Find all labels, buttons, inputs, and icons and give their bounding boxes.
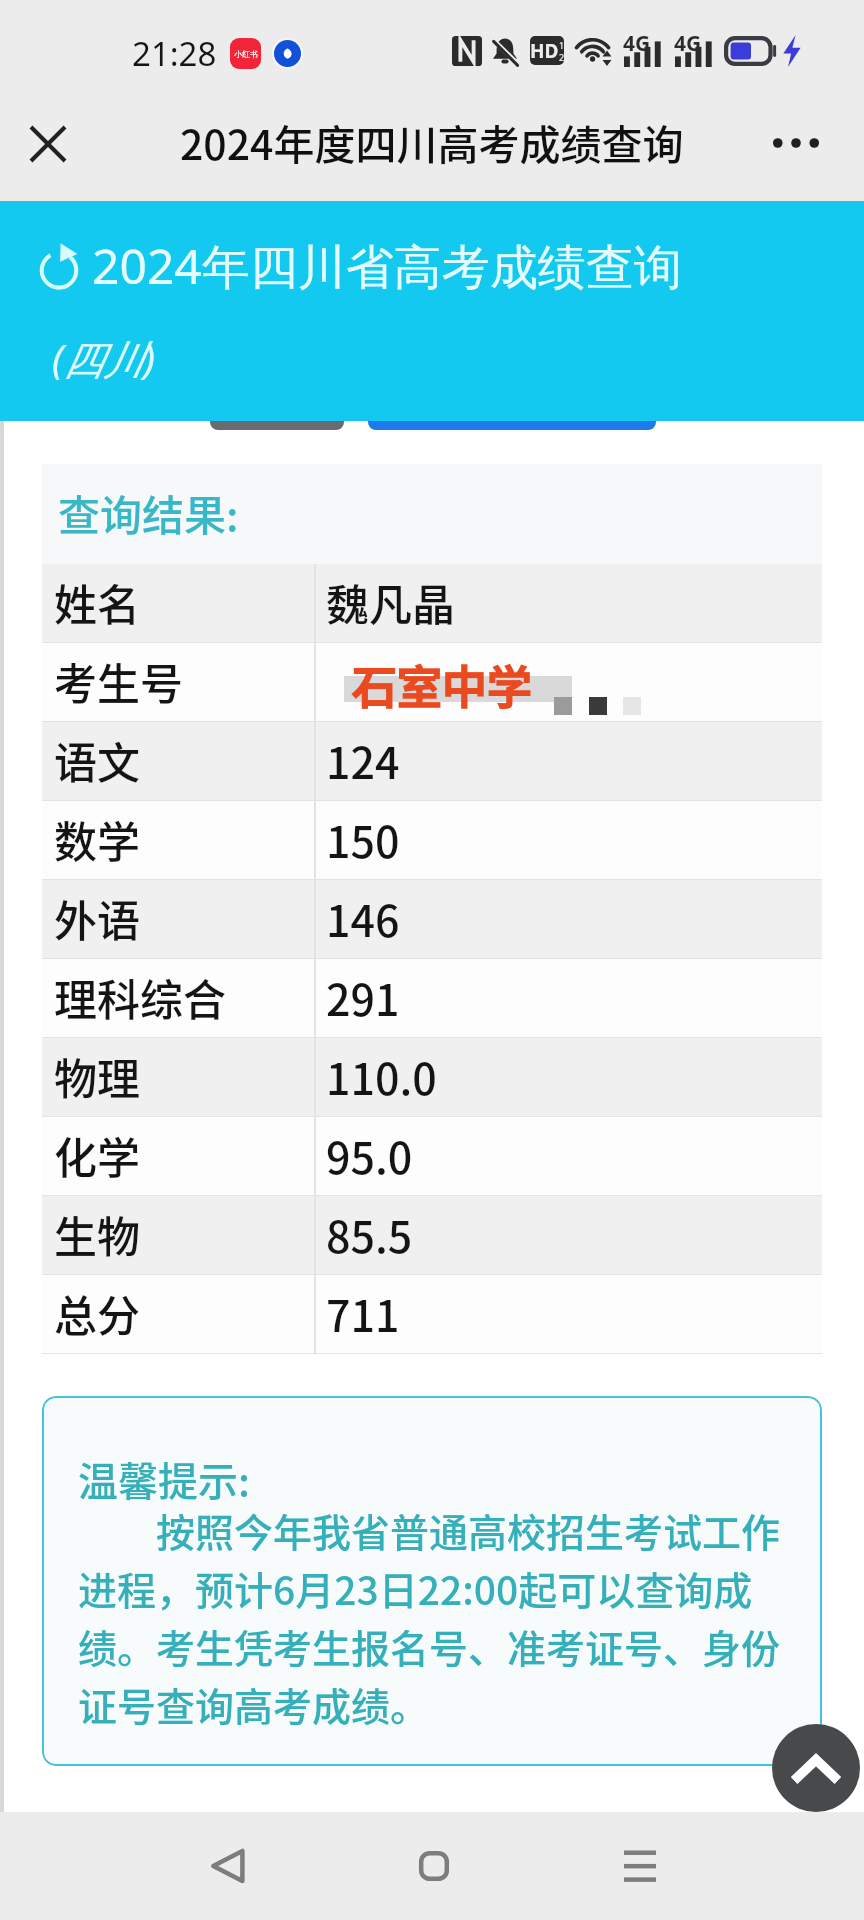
staticText: 21:28 [132, 31, 217, 76]
staticText: 95.0 [326, 1124, 413, 1186]
staticText: 4G [674, 29, 702, 58]
staticText: 化学 [54, 1124, 140, 1186]
staticText: 温馨提示: [78, 1450, 250, 1508]
button[interactable]: Scroll to top [772, 1724, 860, 1812]
staticText: 110.0 [326, 1045, 437, 1107]
staticText: 总分 [54, 1282, 140, 1344]
button[interactable] [210, 396, 344, 430]
staticText: 查询结果: [58, 482, 239, 543]
staticText: 考生号 [54, 650, 183, 712]
staticText: 石室中学 [351, 653, 532, 718]
staticText: 291 [326, 966, 400, 1028]
staticText: 绩。考生凭考生报名号、准考证号、身份 [78, 1618, 781, 1674]
button[interactable]: Close [8, 104, 88, 184]
button[interactable]: More options [756, 103, 836, 183]
staticText: 2 [559, 51, 564, 63]
staticText: 姓名 [54, 571, 140, 633]
staticText: HD [530, 38, 559, 64]
staticText: 1 [559, 39, 564, 51]
staticText: 进程，预计6月23日22:00起可以查询成 [78, 1560, 753, 1616]
staticText: 4G [623, 29, 651, 58]
staticText: 146 [326, 887, 400, 949]
staticText: 按照今年我省普通高校招生考试工作 [78, 1502, 781, 1558]
staticText: 外语 [54, 887, 140, 949]
staticText: 生物 [54, 1203, 140, 1265]
staticText: 语文 [54, 729, 140, 791]
staticText: 124 [326, 729, 400, 791]
staticText: 2024年四川省高考成绩查询 [92, 233, 682, 299]
button[interactable]: Back [173, 1812, 283, 1920]
staticText: 魏凡晶 [326, 571, 455, 633]
staticText: 85.5 [326, 1203, 413, 1265]
button[interactable]: Recent apps [585, 1812, 695, 1920]
staticText: 小红书 [234, 49, 258, 59]
staticText: 711 [326, 1282, 400, 1344]
staticText: (四川) [52, 331, 156, 386]
staticText: 理科综合 [54, 966, 226, 1028]
button[interactable] [368, 396, 656, 430]
staticText: 150 [326, 808, 400, 870]
staticText: 2024年度四川高考成绩查询 [180, 112, 684, 171]
staticText: 数学 [54, 808, 140, 870]
staticText: 证号查询高考成绩。 [78, 1676, 430, 1732]
button[interactable]: Home [379, 1812, 489, 1920]
staticText: 物理 [54, 1045, 140, 1107]
